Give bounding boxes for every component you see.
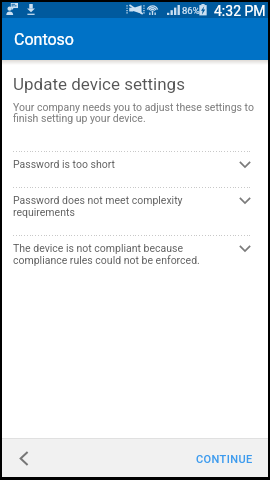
staticText: CONTINUE: [196, 453, 253, 466]
staticText: 86%: [182, 5, 200, 16]
staticText: Password is too short: [13, 158, 203, 170]
staticText: The device is not compliant because comp…: [13, 242, 203, 266]
staticText: Update device settings: [13, 74, 185, 94]
button[interactable]: The device is not compliant because comp…: [2, 236, 268, 283]
staticText: 4:32 PM: [214, 3, 266, 19]
button[interactable]: CONTINUE: [182, 442, 268, 474]
button[interactable]: Password is too short: [2, 152, 268, 187]
staticText: Contoso: [14, 30, 74, 49]
button[interactable]: Password does not meet complexity requir…: [2, 188, 268, 235]
button[interactable]: Back: [2, 439, 44, 477]
staticText: Password does not meet complexity requir…: [13, 194, 203, 218]
staticText: Your company needs you to adjust these s…: [13, 101, 256, 124]
